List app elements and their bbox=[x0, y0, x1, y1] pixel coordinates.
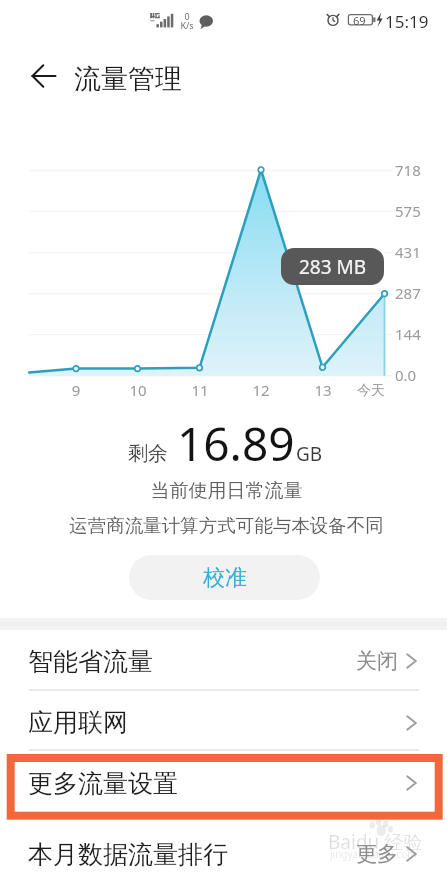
staticText: 今天 bbox=[350, 382, 392, 400]
staticText: 16.89 bbox=[177, 412, 295, 475]
staticText: 校准 bbox=[203, 564, 247, 592]
staticText: 当前使用日常流量 bbox=[3, 479, 447, 503]
button[interactable]: 应用联网 bbox=[0, 692, 447, 753]
staticText: 关闭 bbox=[356, 648, 398, 674]
staticText: 9 bbox=[55, 380, 97, 400]
staticText: 11 bbox=[179, 380, 221, 400]
staticText: 更多流量设置 bbox=[28, 768, 178, 799]
staticText: 运营商流量计算方式可能与本设备不同 bbox=[3, 514, 447, 537]
staticText: 144 bbox=[395, 324, 421, 344]
staticText: 431 bbox=[395, 242, 421, 262]
staticText: 应用联网 bbox=[28, 707, 128, 738]
staticText: 0 K/s bbox=[179, 10, 195, 32]
staticText: jingyan.baidu.com bbox=[330, 847, 417, 861]
staticText: 13 bbox=[302, 380, 344, 400]
staticText: Baidu 经验 bbox=[328, 829, 423, 855]
staticText: 10 bbox=[117, 380, 159, 400]
button[interactable]: 本月数据流量排行 bbox=[0, 823, 447, 873]
staticText: 剩余 bbox=[128, 441, 168, 466]
staticText: 287 bbox=[395, 283, 421, 303]
staticText: 718 bbox=[395, 160, 421, 180]
staticText: 更多 bbox=[356, 841, 398, 867]
staticText: 575 bbox=[395, 201, 421, 221]
staticText: 本月数据流量排行 bbox=[28, 839, 228, 870]
staticText: GB bbox=[296, 441, 323, 467]
button[interactable]: Back bbox=[18, 48, 70, 104]
staticText: 流量管理 bbox=[74, 62, 182, 96]
button[interactable]: 更多流量设置 bbox=[0, 752, 447, 814]
staticText: 283 MB bbox=[299, 254, 367, 280]
staticText: 69 bbox=[353, 13, 366, 28]
staticText: 15:19 bbox=[385, 10, 429, 33]
staticText: 12 bbox=[240, 380, 282, 400]
staticText: 0.0 bbox=[395, 365, 417, 385]
staticText: 智能省流量 bbox=[28, 646, 153, 677]
button[interactable]: 校准 bbox=[129, 555, 320, 600]
button[interactable]: 智能省流量 bbox=[0, 630, 447, 692]
